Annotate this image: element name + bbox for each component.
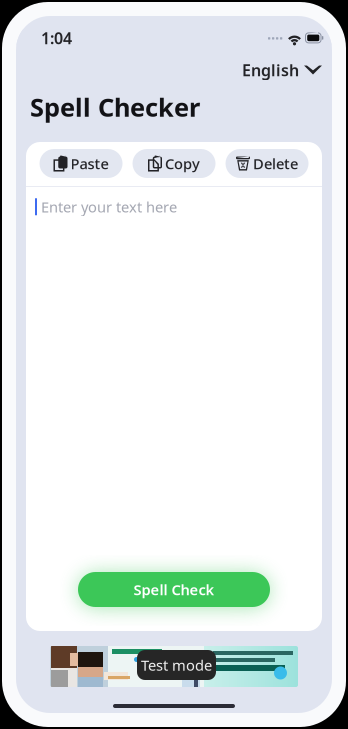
button[interactable]: Spell Check bbox=[78, 572, 270, 607]
button[interactable]: Paste bbox=[39, 149, 122, 178]
staticText: English bbox=[242, 59, 299, 81]
staticText: Spell Checker bbox=[30, 90, 200, 124]
staticText: 1:04 bbox=[41, 27, 72, 49]
staticText: Spell Check bbox=[133, 580, 214, 599]
button[interactable]: Advertisement bbox=[50, 646, 298, 687]
staticText: Copy bbox=[165, 154, 200, 173]
button[interactable]: Copy bbox=[132, 149, 215, 178]
staticText: Test mode bbox=[141, 655, 212, 675]
staticText: Enter your text here bbox=[41, 197, 177, 216]
staticText: Paste bbox=[70, 154, 108, 173]
staticText: Delete bbox=[253, 154, 298, 173]
button[interactable]: English bbox=[237, 58, 327, 82]
button[interactable]: Delete bbox=[225, 149, 308, 178]
